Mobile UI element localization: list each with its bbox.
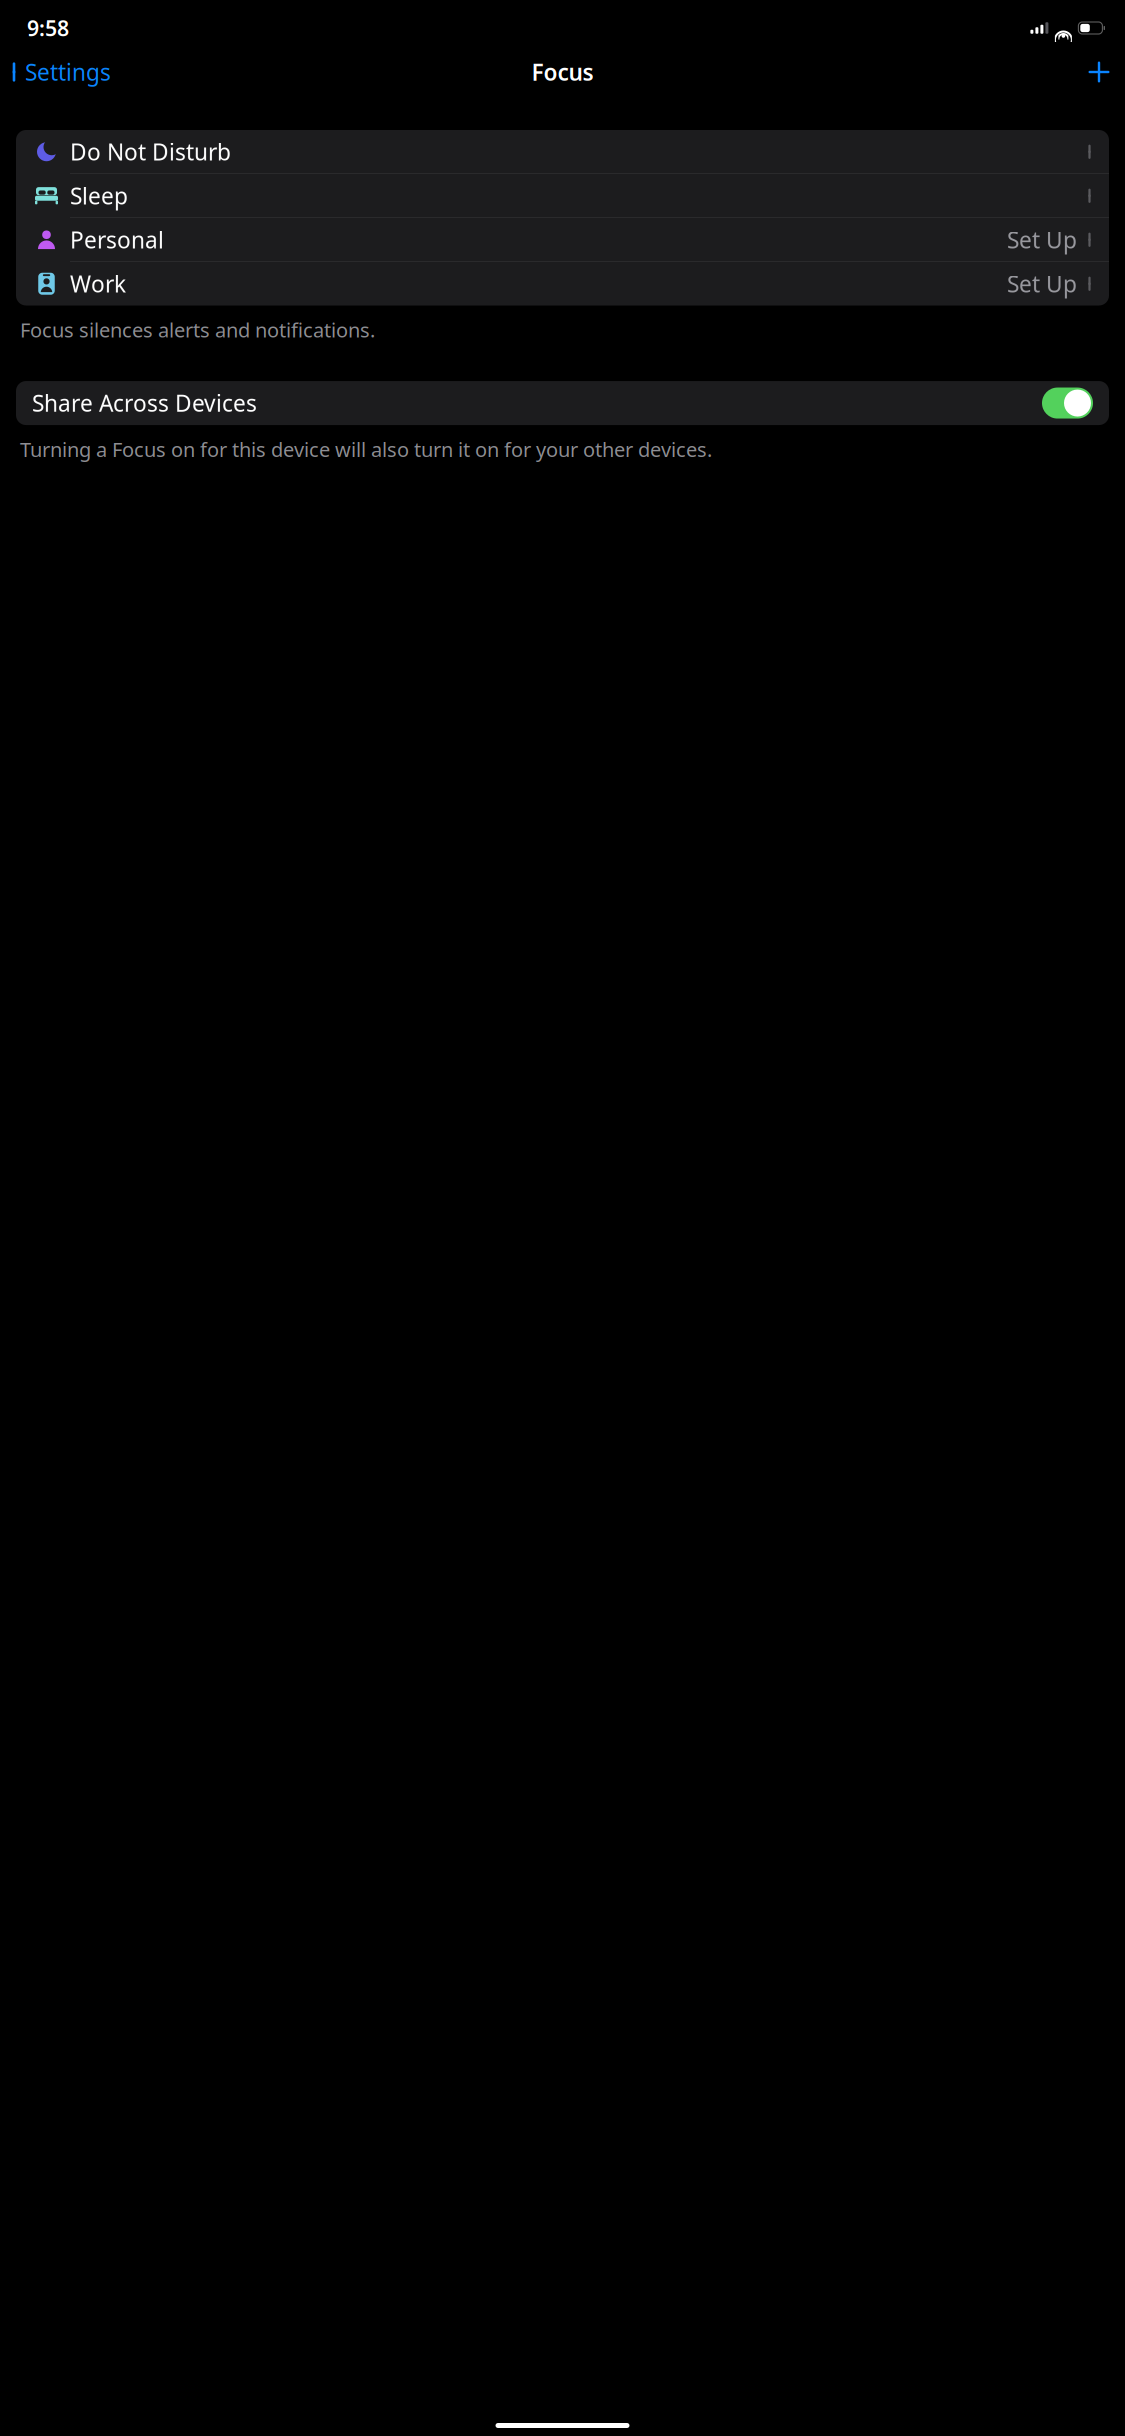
staticText: Do Not Disturb [70, 137, 231, 167]
staticText: Share Across Devices [32, 388, 257, 418]
staticText: 9:58 [27, 14, 69, 42]
staticText: Set Up [1007, 269, 1077, 299]
staticText: Work [70, 269, 126, 299]
button[interactable]: Add Focus [1077, 50, 1125, 94]
staticText: Personal [70, 225, 164, 255]
button[interactable]: Settings [0, 50, 119, 94]
button[interactable]: Share Across Devices [1042, 388, 1093, 419]
staticText: Sleep [70, 181, 128, 211]
button[interactable]: Do Not Disturb [16, 130, 1109, 174]
staticText: Settings [25, 57, 111, 87]
button[interactable]: Work [16, 262, 1109, 305]
staticText: Focus [531, 57, 593, 87]
button[interactable]: Personal [16, 218, 1109, 262]
staticText: Focus silences alerts and notifications. [20, 316, 375, 343]
staticText: Set Up [1007, 225, 1077, 255]
button[interactable]: Sleep [16, 174, 1109, 218]
staticText: Turning a Focus on for this device will … [20, 436, 712, 463]
